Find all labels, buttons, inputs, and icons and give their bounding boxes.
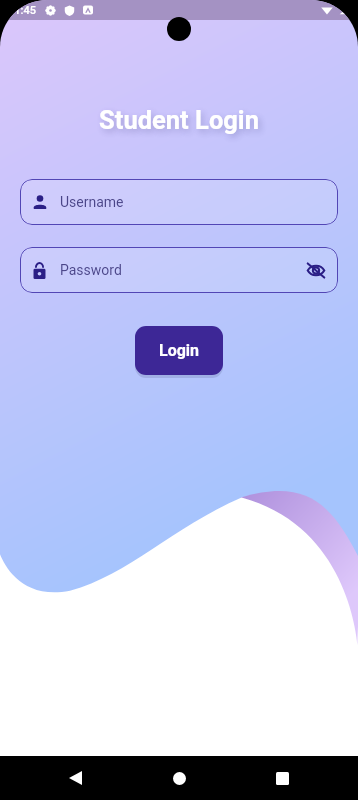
staticText: Username [60,194,124,210]
staticText: Login [159,341,200,360]
staticText: 11:45 [8,4,36,17]
button[interactable]: Recent apps [260,756,304,800]
staticText: Password [60,262,122,278]
button[interactable]: Username [20,179,338,225]
staticText: Student Login [0,105,358,135]
button[interactable]: Password [20,247,338,293]
button[interactable]: Back [53,756,97,800]
button[interactable]: Home [157,756,201,800]
button[interactable]: Show password [298,252,334,288]
button[interactable]: Login [135,326,223,375]
